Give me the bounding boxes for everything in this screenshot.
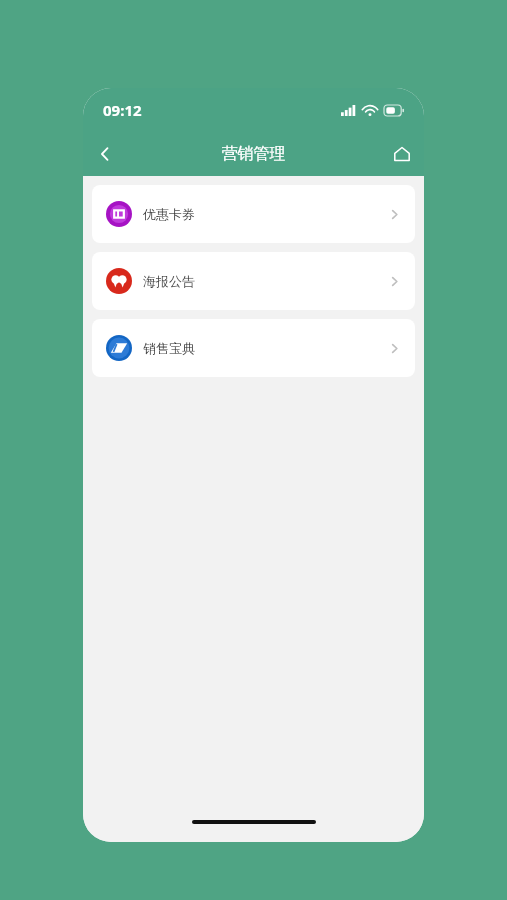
button[interactable]: 海报公告 xyxy=(92,252,415,310)
button[interactable]: 销售宝典 xyxy=(92,319,415,377)
staticText: 优惠卡券 xyxy=(143,206,195,222)
staticText: 海报公告 xyxy=(143,273,195,289)
staticText: 09:12 xyxy=(103,100,142,120)
button[interactable]: Home xyxy=(380,132,424,176)
button[interactable]: Back xyxy=(83,132,127,176)
button[interactable]: 优惠卡券 xyxy=(92,185,415,243)
staticText: 销售宝典 xyxy=(143,340,195,356)
staticText: 营销管理 xyxy=(127,144,380,164)
